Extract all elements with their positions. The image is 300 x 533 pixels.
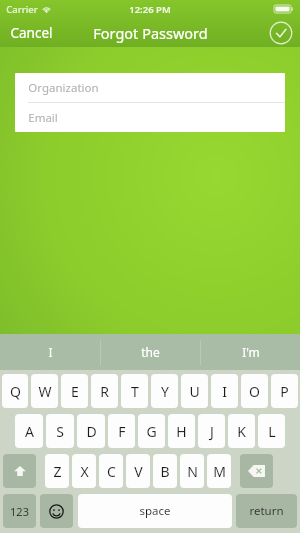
button[interactable]: B (153, 454, 177, 488)
button[interactable]: Backspace (240, 454, 273, 488)
button[interactable]: Cancel (0, 20, 63, 46)
staticText: A (25, 422, 34, 441)
staticText: T (131, 382, 139, 401)
staticText: G (146, 422, 157, 441)
button[interactable]: the (101, 334, 200, 370)
button[interactable]: K (228, 414, 255, 448)
button[interactable]: Email (15, 103, 285, 132)
button[interactable]: T (121, 374, 148, 408)
staticText: N (187, 462, 198, 481)
staticText: Q (10, 382, 21, 401)
staticText: V (134, 462, 143, 481)
staticText: K (237, 422, 246, 441)
button[interactable]: V (126, 454, 150, 488)
button[interactable]: Emoji (40, 494, 73, 528)
staticText: 12:26 PM (129, 3, 171, 16)
staticText: L (268, 422, 276, 441)
staticText: Organization (28, 80, 99, 96)
button[interactable]: space (78, 494, 232, 528)
staticText: F (118, 422, 126, 441)
button[interactable]: Y (151, 374, 178, 408)
staticText: Email (28, 110, 58, 126)
staticText: Z (53, 462, 62, 481)
staticText: M (213, 462, 226, 481)
button[interactable]: C (99, 454, 123, 488)
button[interactable]: D (77, 414, 105, 448)
button[interactable]: W (31, 374, 58, 408)
staticText: R (100, 382, 109, 401)
staticText: C (107, 462, 116, 481)
button[interactable]: P (271, 374, 298, 408)
button[interactable]: H (168, 414, 195, 448)
staticText: D (86, 422, 97, 441)
button[interactable]: Organization (15, 73, 285, 102)
staticText: H (176, 422, 187, 441)
button[interactable]: U (181, 374, 208, 408)
staticText: Carrier (6, 3, 38, 16)
staticText: space (139, 503, 171, 519)
button[interactable]: X (72, 454, 96, 488)
button[interactable]: S (46, 414, 74, 448)
staticText: the (141, 344, 160, 360)
staticText: I (222, 382, 227, 401)
staticText: B (160, 462, 170, 481)
button[interactable]: I (0, 334, 100, 370)
staticText: E (71, 382, 79, 401)
staticText: Cancel (10, 24, 53, 42)
button[interactable]: Z (45, 454, 69, 488)
staticText: O (249, 382, 260, 401)
staticText: I (48, 344, 53, 360)
button[interactable]: O (241, 374, 268, 408)
staticText: W (38, 382, 52, 401)
button[interactable]: Submit (268, 20, 294, 46)
button[interactable]: A (15, 414, 43, 448)
button[interactable]: 123 (3, 494, 36, 528)
button[interactable]: N (180, 454, 204, 488)
button[interactable]: M (207, 454, 231, 488)
staticText: U (189, 382, 200, 401)
staticText: S (56, 422, 64, 441)
button[interactable]: F (108, 414, 135, 448)
button[interactable]: R (91, 374, 118, 408)
staticText: J (210, 422, 214, 441)
button[interactable]: I'm (201, 334, 300, 370)
button[interactable]: I (211, 374, 238, 408)
staticText: return (249, 503, 284, 519)
button[interactable]: return (236, 494, 297, 528)
staticText: Forgot Password (93, 23, 208, 43)
button[interactable]: E (61, 374, 88, 408)
staticText: X (80, 462, 89, 481)
staticText: Y (161, 382, 169, 401)
button[interactable]: J (198, 414, 225, 448)
button[interactable]: L (258, 414, 285, 448)
staticText: 123 (10, 504, 29, 519)
button[interactable]: Q (2, 374, 28, 408)
button[interactable]: G (138, 414, 165, 448)
staticText: I'm (242, 344, 260, 360)
button[interactable]: Shift (3, 454, 36, 488)
staticText: P (280, 382, 289, 401)
